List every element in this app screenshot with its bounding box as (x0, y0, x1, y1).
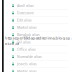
button[interactable]: Airoll alias (0, 2, 72, 9)
button[interactable]: Oil alias (0, 39, 72, 46)
button[interactable]: Datestone (0, 9, 72, 17)
staticText: Jewels alias (17, 62, 37, 66)
staticText: Edit alias (17, 18, 32, 22)
staticText: Normalde alias (17, 54, 42, 59)
button[interactable]: Office alias (0, 46, 72, 53)
staticText: httpseperti8dapatditerima.blogspot.co.id (5, 35, 72, 46)
staticText: Office alias (17, 47, 36, 52)
button[interactable]: Normalde alias (0, 53, 72, 60)
staticText: Marble alias (17, 69, 37, 72)
button[interactable]: Market alias (0, 24, 72, 31)
staticText: Market alias (17, 25, 37, 30)
staticText: Oil alias (17, 40, 31, 44)
staticText: Datestone (17, 10, 34, 15)
button[interactable]: Marble alias (0, 68, 72, 72)
button[interactable]: Jewels alias (0, 60, 72, 68)
staticText: Bangkok alias (17, 32, 40, 37)
button[interactable]: Edit alias (0, 17, 72, 24)
button[interactable]: Bangkok alias (0, 31, 72, 39)
staticText: Airoll alias (17, 3, 34, 8)
